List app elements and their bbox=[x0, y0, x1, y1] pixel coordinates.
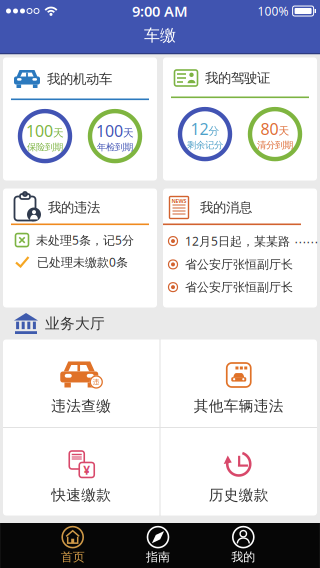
button[interactable]: 其他车辆违法 bbox=[160, 339, 317, 427]
staticText: 业务大厅 bbox=[45, 314, 105, 332]
staticText: 保险到期 bbox=[27, 141, 63, 153]
staticText: 9:00 AM bbox=[132, 1, 188, 21]
staticText: 天 bbox=[278, 124, 289, 137]
staticText: 违法查缴 bbox=[51, 397, 111, 415]
button[interactable]: 历史缴款 bbox=[160, 428, 317, 516]
staticText: 快速缴款 bbox=[51, 486, 111, 504]
button[interactable]: NEWS bbox=[163, 188, 317, 307]
staticText: 指南 bbox=[146, 550, 170, 564]
staticText: 省公安厅张恒副厅长 bbox=[185, 280, 293, 294]
staticText: 我的 bbox=[231, 550, 255, 564]
staticText: 天 bbox=[53, 126, 64, 139]
staticText: 车缴 bbox=[144, 26, 176, 45]
button[interactable]: 我的机动车 bbox=[3, 57, 157, 180]
staticText: 清分到期 bbox=[257, 139, 293, 151]
staticText: 100 bbox=[96, 120, 123, 141]
staticText: 分 bbox=[208, 124, 219, 137]
staticText: 100 bbox=[26, 120, 53, 141]
staticText: 100% bbox=[258, 3, 289, 19]
staticText: NEWS bbox=[171, 197, 186, 205]
staticText: 80 bbox=[260, 118, 278, 139]
button[interactable]: 我的 bbox=[201, 523, 286, 568]
button[interactable]: 我的驾驶证 bbox=[163, 57, 317, 180]
staticText: ¥ bbox=[83, 462, 90, 478]
staticText: 历史缴款 bbox=[209, 486, 269, 504]
button[interactable]: 我的违法 bbox=[3, 188, 157, 307]
button[interactable]: ¥ bbox=[3, 428, 159, 516]
staticText: 我的机动车 bbox=[47, 71, 112, 87]
staticText: 首页 bbox=[61, 550, 85, 564]
staticText: 已处理未缴款0条 bbox=[37, 254, 128, 270]
staticText: 天 bbox=[123, 126, 134, 139]
button[interactable]: 指南 bbox=[115, 523, 201, 568]
staticText: 年检到期 bbox=[97, 141, 133, 153]
staticText: 剩余记分 bbox=[187, 139, 223, 151]
staticText: 我的违法 bbox=[48, 199, 100, 216]
staticText: 我的驾驶证 bbox=[205, 70, 270, 86]
staticText: 未处理5条，记5分 bbox=[36, 232, 134, 248]
button[interactable]: 首页 bbox=[30, 523, 115, 568]
staticText: 省公安厅张恒副厅长 bbox=[185, 257, 293, 272]
staticText: 违 bbox=[93, 378, 100, 386]
staticText: 我的消息 bbox=[200, 199, 252, 216]
staticText: 12月5日起，某某路 ⋯⋯ bbox=[185, 233, 318, 249]
staticText: 12 bbox=[190, 118, 208, 139]
staticText: 其他车辆违法 bbox=[194, 397, 284, 415]
button[interactable]: 违 bbox=[3, 339, 159, 427]
